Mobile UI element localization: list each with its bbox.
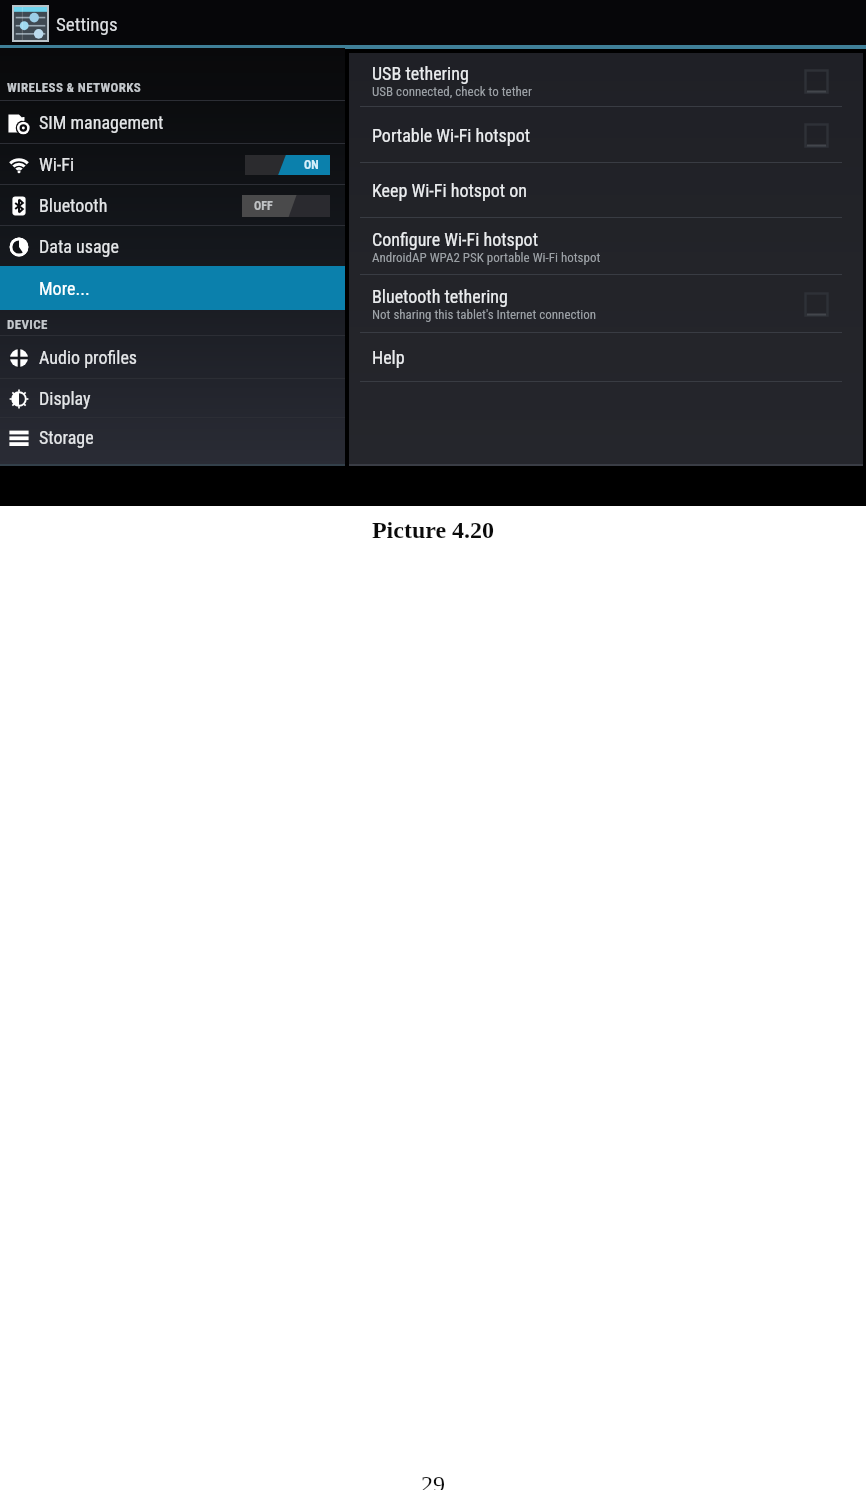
staticText: AndroidAP WPA2 PSK portable Wi-Fi hotspo…	[372, 250, 601, 265]
button[interactable]: Bluetooth tethering	[349, 275, 863, 333]
staticText: SIM management	[39, 112, 164, 133]
button[interactable]: Toggle USB tethering	[804, 69, 829, 94]
button[interactable]: More...	[0, 266, 345, 310]
button[interactable]: Bluetooth off	[242, 195, 330, 217]
staticText: Not sharing this tablet's Internet conne…	[372, 307, 597, 322]
staticText: Storage	[39, 427, 94, 448]
button[interactable]: USB tethering	[349, 55, 863, 107]
staticText: Settings	[56, 13, 118, 35]
button[interactable]: Settings	[12, 5, 49, 42]
button[interactable]: Keep Wi-Fi hotspot on	[349, 163, 863, 218]
staticText: DEVICE	[7, 317, 48, 332]
staticText: Keep Wi-Fi hotspot on	[372, 180, 528, 201]
staticText: Picture 4.20	[0, 517, 866, 544]
staticText: Bluetooth tethering	[372, 286, 508, 307]
staticText: Portable Wi-Fi hotspot	[372, 125, 531, 146]
staticText: 29	[0, 1471, 866, 1490]
button[interactable]: Toggle Portable Wi-Fi hotspot	[804, 123, 829, 148]
staticText: USB connected, check to tether	[372, 84, 532, 99]
staticText: ON	[304, 158, 319, 172]
staticText: More...	[39, 278, 90, 299]
button[interactable]: Data usage	[0, 226, 345, 266]
staticText: Data usage	[39, 236, 119, 257]
button[interactable]: Audio profiles	[0, 336, 345, 379]
staticText: Bluetooth	[39, 195, 108, 216]
button[interactable]: Wi-Fi	[0, 144, 345, 185]
button[interactable]: Help	[349, 333, 863, 382]
staticText: Display	[39, 388, 91, 409]
staticText: WIRELESS & NETWORKS	[7, 80, 142, 95]
button[interactable]: Display	[0, 379, 345, 418]
staticText: Audio profiles	[39, 347, 138, 368]
staticText: Configure Wi-Fi hotspot	[372, 229, 538, 250]
button[interactable]: Wi-Fi on	[245, 155, 330, 175]
staticText: USB tethering	[372, 63, 469, 84]
button[interactable]: Portable Wi-Fi hotspot	[349, 107, 863, 163]
button[interactable]: Bluetooth	[0, 185, 345, 226]
button[interactable]: Toggle Bluetooth tethering	[804, 292, 829, 317]
staticText: Wi-Fi	[39, 154, 75, 175]
button[interactable]: SIM management	[0, 101, 345, 144]
button[interactable]: Storage	[0, 418, 345, 457]
button[interactable]: Configure Wi-Fi hotspot	[349, 218, 863, 275]
staticText: Help	[372, 347, 405, 368]
staticText: OFF	[254, 199, 273, 213]
